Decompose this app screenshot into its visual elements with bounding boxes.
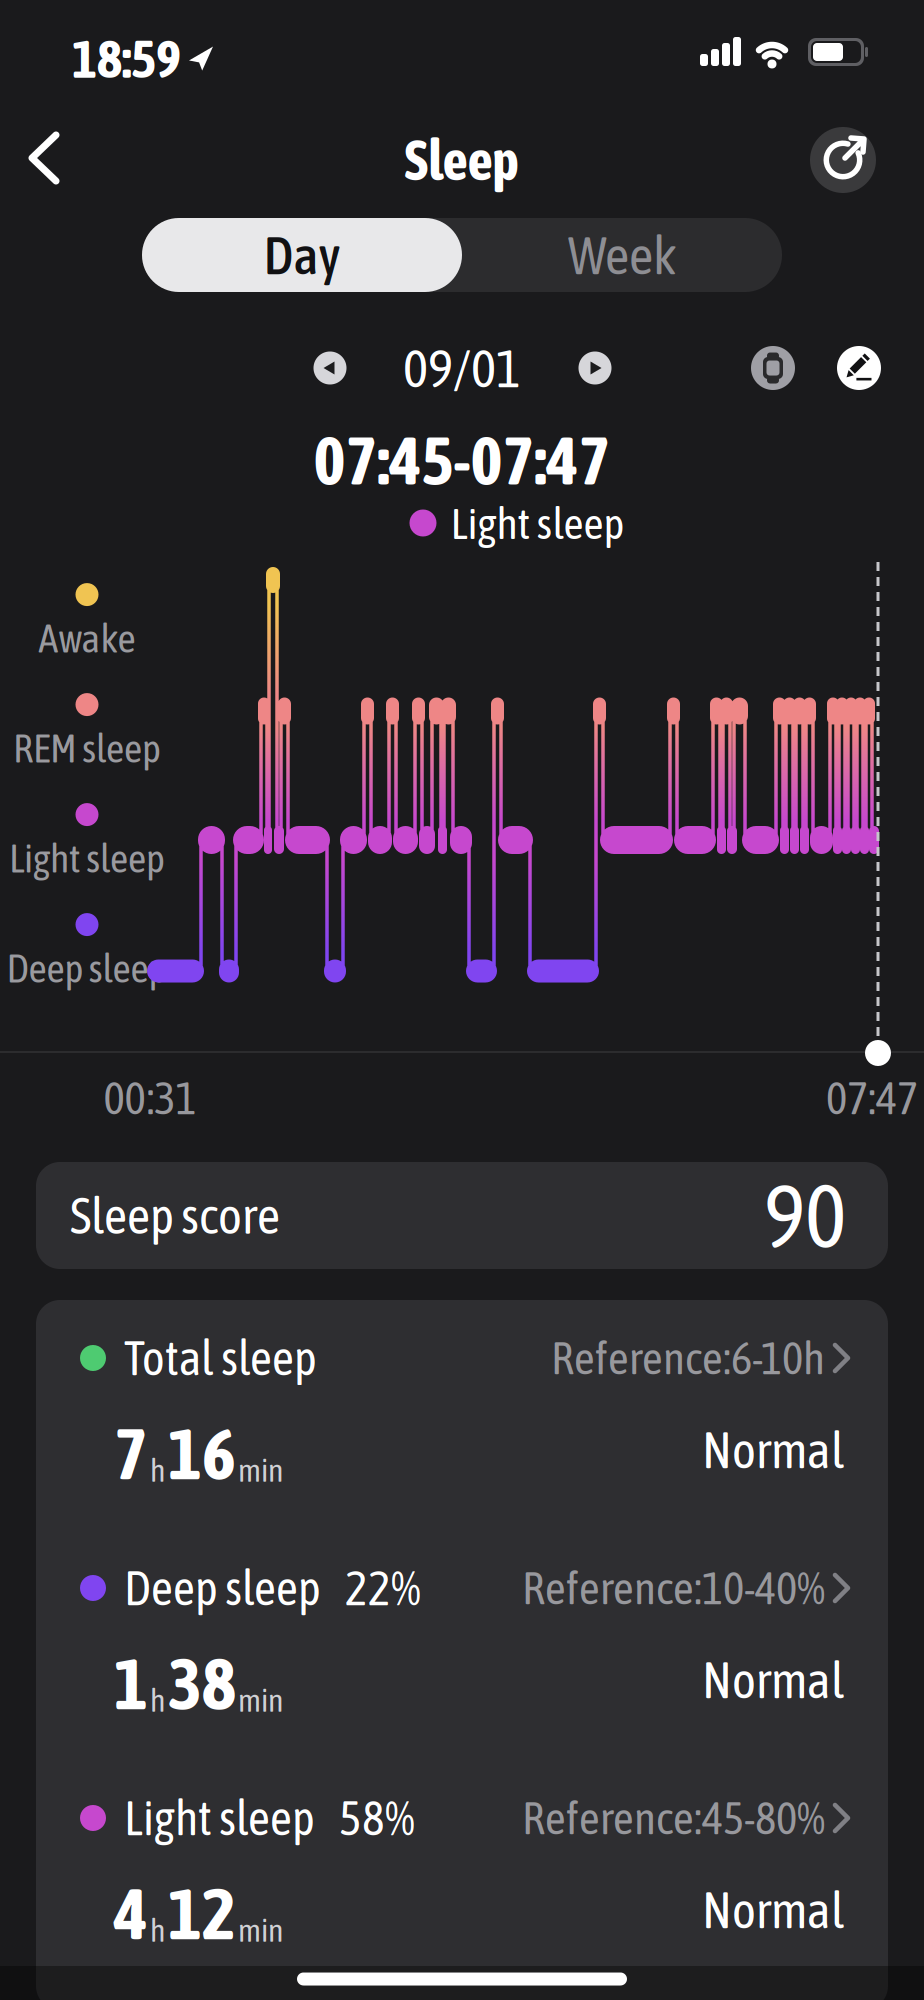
- staticText: Normal: [702, 1881, 844, 1939]
- staticText: Total sleep: [124, 1330, 317, 1385]
- staticText: 58%: [339, 1790, 415, 1845]
- staticText: 7: [114, 1412, 148, 1494]
- staticText: 07:45-07:47: [313, 421, 610, 499]
- staticText: 4: [114, 1872, 148, 1954]
- staticText: Day: [263, 224, 340, 285]
- staticText: Reference:45-80%: [522, 1792, 825, 1844]
- button[interactable]: Watch data: [751, 346, 795, 390]
- staticText: 1: [114, 1642, 148, 1724]
- staticText: 16: [168, 1412, 236, 1494]
- button[interactable]: Back: [12, 115, 76, 201]
- button[interactable]: Reference:45-80%: [522, 1792, 848, 1844]
- staticText: 07:47: [826, 1072, 918, 1124]
- staticText: Normal: [702, 1421, 844, 1479]
- staticText: min: [238, 1682, 284, 1718]
- staticText: Reference:10-40%: [522, 1562, 825, 1614]
- staticText: Awake: [38, 615, 135, 661]
- staticText: Sleep score: [70, 1186, 280, 1245]
- button[interactable]: Sleep score: [36, 1162, 888, 1269]
- staticText: min: [238, 1912, 284, 1948]
- button[interactable]: Next day: [578, 351, 611, 384]
- button[interactable]: Reference:6-10h: [551, 1332, 848, 1384]
- button[interactable]: Reference:10-40%: [522, 1562, 848, 1614]
- staticText: h: [150, 1452, 166, 1488]
- staticText: min: [238, 1452, 284, 1488]
- staticText: Light sleep: [9, 835, 165, 881]
- staticText: h: [150, 1912, 166, 1948]
- staticText: Sleep: [404, 128, 519, 192]
- staticText: Light sleep: [450, 498, 624, 548]
- button[interactable]: Previous day: [313, 351, 346, 384]
- button[interactable]: Share: [810, 127, 876, 193]
- staticText: 00:31: [103, 1072, 196, 1124]
- staticText: Deep sleep: [6, 945, 167, 991]
- staticText: 90: [764, 1165, 846, 1266]
- staticText: Deep sleep: [124, 1560, 321, 1615]
- staticText: 18:59: [72, 28, 181, 89]
- button[interactable]: Day: [142, 218, 462, 292]
- staticText: Week: [568, 224, 676, 285]
- staticText: 12: [168, 1872, 236, 1954]
- button[interactable]: Week: [462, 218, 782, 292]
- staticText: Normal: [702, 1651, 844, 1709]
- staticText: 22%: [345, 1560, 421, 1615]
- staticText: REM sleep: [13, 725, 161, 771]
- button[interactable]: Edit: [837, 346, 881, 390]
- staticText: h: [150, 1682, 166, 1718]
- staticText: Reference:6-10h: [551, 1332, 825, 1384]
- staticText: 09/01: [403, 337, 521, 398]
- staticText: 38: [168, 1642, 236, 1724]
- staticText: Light sleep: [124, 1790, 315, 1845]
